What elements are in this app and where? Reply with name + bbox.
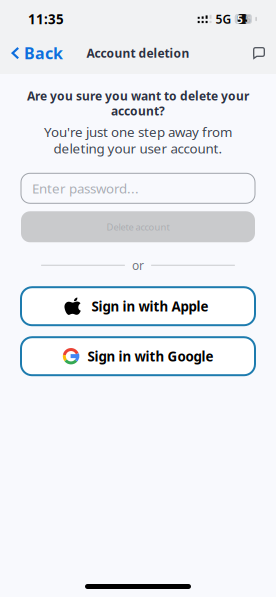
staticText: Enter password... <box>32 179 139 197</box>
staticText: account? <box>111 103 165 119</box>
staticText: Delete account <box>106 221 169 233</box>
staticText: 11:35 <box>28 10 64 28</box>
staticText: 5 <box>237 12 243 26</box>
staticText: 5G <box>216 11 232 27</box>
staticText: Are you sure you want to delete your <box>27 88 249 104</box>
button[interactable]: Sign in with Google <box>21 337 255 375</box>
button[interactable]: Sign in with Apple <box>21 287 255 325</box>
staticText: Account deletion <box>86 45 189 61</box>
staticText: Sign in with Apple <box>91 297 208 315</box>
button[interactable]: Back <box>0 38 71 68</box>
staticText: or <box>132 257 144 273</box>
staticText: Back <box>24 42 63 64</box>
staticText: 5 <box>245 12 251 26</box>
button[interactable]: Delete account <box>21 211 255 242</box>
button[interactable]: Messages <box>245 38 276 68</box>
staticText: You're just one step away from <box>44 123 232 141</box>
staticText: Sign in with Google <box>87 347 213 365</box>
staticText: deleting your user account. <box>53 140 222 157</box>
